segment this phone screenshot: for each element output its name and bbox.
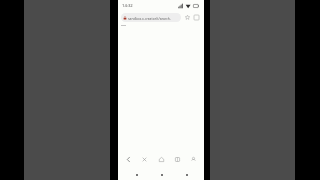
button[interactable]: Back [122,153,135,166]
button[interactable]: Back [132,170,141,179]
button[interactable]: Recents [182,170,191,179]
button[interactable]: Tab switcher [171,153,184,166]
button[interactable]: Home [157,170,166,179]
button[interactable]: sandbox.x-creator/t/search-index/237382 [121,13,181,22]
button[interactable]: Stop loading [138,153,151,166]
staticText: 14:32 [122,3,133,9]
button[interactable]: Tabs [192,13,201,22]
button[interactable]: Home [155,153,168,166]
button[interactable]: Account [187,153,200,166]
button[interactable]: Bookmark [183,13,192,22]
staticText: sandbox.x-creator/t/search-index/237382 [128,16,179,20]
